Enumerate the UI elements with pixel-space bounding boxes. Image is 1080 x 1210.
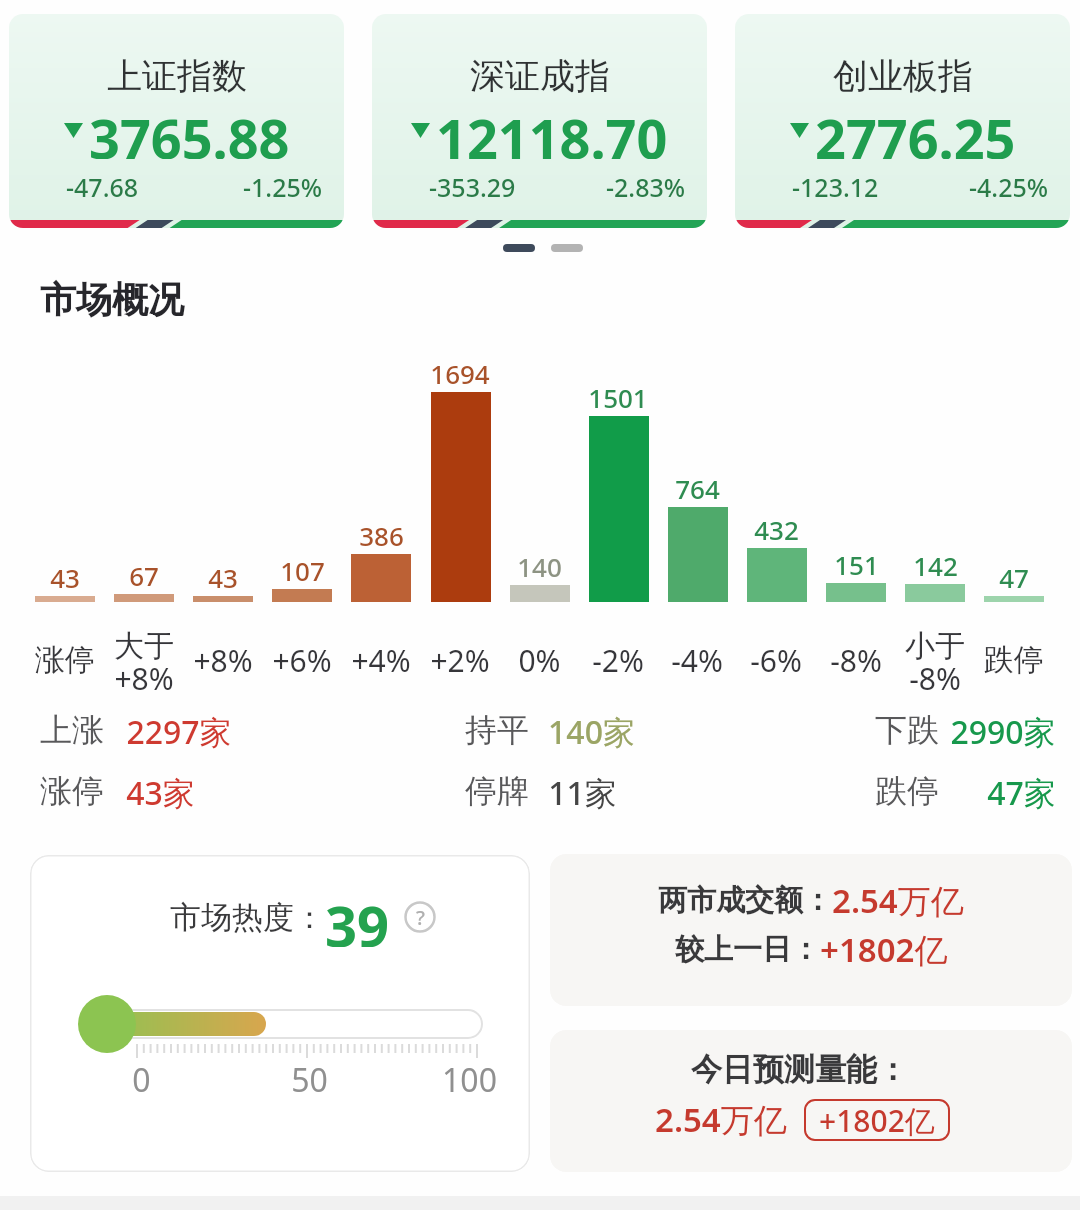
staticText: 停牌 bbox=[465, 771, 529, 811]
staticText: 2776.25 bbox=[815, 101, 1016, 159]
staticText: 涨停 bbox=[35, 641, 95, 679]
staticText: 1501 bbox=[588, 380, 648, 414]
staticText: 100 bbox=[442, 1058, 497, 1098]
button[interactable]: 上证指数 bbox=[9, 14, 344, 228]
staticText: 涨停 bbox=[40, 771, 104, 811]
staticText: 43 bbox=[208, 560, 238, 594]
staticText: 43家 bbox=[126, 771, 195, 811]
staticText: 2.54万亿 bbox=[655, 1097, 787, 1142]
staticText: -123.12 bbox=[792, 170, 879, 204]
button[interactable]: 创业板指 bbox=[735, 14, 1070, 228]
staticText: 小于 -8% bbox=[905, 627, 965, 695]
staticText: -6% bbox=[750, 640, 802, 680]
staticText: 107 bbox=[280, 553, 325, 587]
staticText: 47家 bbox=[987, 771, 1056, 811]
staticText: 140 bbox=[517, 549, 562, 583]
staticText: 43 bbox=[50, 560, 80, 594]
staticText: -8% bbox=[830, 640, 882, 680]
staticText: 深证成指 bbox=[470, 54, 610, 96]
staticText: 上证指数 bbox=[107, 54, 247, 96]
staticText: -4.25% bbox=[969, 170, 1049, 204]
staticText: 67 bbox=[129, 558, 159, 592]
staticText: 0% bbox=[518, 640, 561, 680]
staticText: 2.54万亿 bbox=[832, 878, 964, 923]
staticText: 两市成交额： bbox=[658, 882, 832, 919]
staticText: +1802亿 bbox=[819, 1100, 935, 1141]
staticText: 创业板指 bbox=[833, 54, 973, 96]
staticText: 2297家 bbox=[126, 710, 232, 750]
staticText: 432 bbox=[754, 512, 799, 546]
staticText: 市场概况 bbox=[40, 277, 184, 322]
button[interactable]: 深证成指 bbox=[372, 14, 707, 228]
button[interactable]: 市场热度： bbox=[30, 855, 530, 1172]
staticText: +4% bbox=[351, 640, 411, 680]
button[interactable]: 今日预测量能： bbox=[550, 1030, 1072, 1172]
staticText: 大于 +8% bbox=[114, 627, 174, 695]
staticText: 下跌 bbox=[875, 710, 939, 750]
staticText: 跌停 bbox=[875, 771, 939, 811]
staticText: 50 bbox=[291, 1058, 328, 1098]
staticText: -4% bbox=[671, 640, 723, 680]
staticText: 1694 bbox=[430, 356, 490, 390]
staticText: +6% bbox=[272, 640, 332, 680]
staticText: 上涨 bbox=[40, 710, 104, 750]
staticText: ? bbox=[416, 904, 425, 931]
staticText: 今日预测量能： bbox=[691, 1050, 908, 1089]
staticText: 2990家 bbox=[950, 710, 1056, 750]
staticText: -353.29 bbox=[429, 170, 516, 204]
staticText: +2% bbox=[430, 640, 490, 680]
staticText: 跌停 bbox=[984, 641, 1044, 679]
staticText: -2% bbox=[592, 640, 644, 680]
staticText: 持平 bbox=[465, 710, 529, 750]
staticText: 11家 bbox=[548, 771, 617, 811]
staticText: 0 bbox=[132, 1058, 151, 1098]
staticText: 较上一日： bbox=[675, 931, 820, 968]
staticText: 151 bbox=[834, 547, 879, 581]
staticText: 市场热度： bbox=[170, 898, 325, 937]
staticText: -1.25% bbox=[243, 170, 323, 204]
staticText: 140家 bbox=[548, 710, 635, 750]
staticText: 3765.88 bbox=[89, 101, 290, 159]
staticText: -2.83% bbox=[606, 170, 686, 204]
staticText: 39 bbox=[325, 887, 390, 947]
button[interactable]: 两市成交额： bbox=[550, 854, 1072, 1006]
staticText: +1802亿 bbox=[820, 927, 948, 972]
staticText: 142 bbox=[913, 548, 958, 582]
staticText: 764 bbox=[675, 471, 720, 505]
staticText: +8% bbox=[193, 640, 253, 680]
staticText: 12118.70 bbox=[436, 101, 668, 159]
staticText: 386 bbox=[359, 518, 404, 552]
staticText: -47.68 bbox=[66, 170, 139, 204]
staticText: 47 bbox=[999, 560, 1029, 594]
